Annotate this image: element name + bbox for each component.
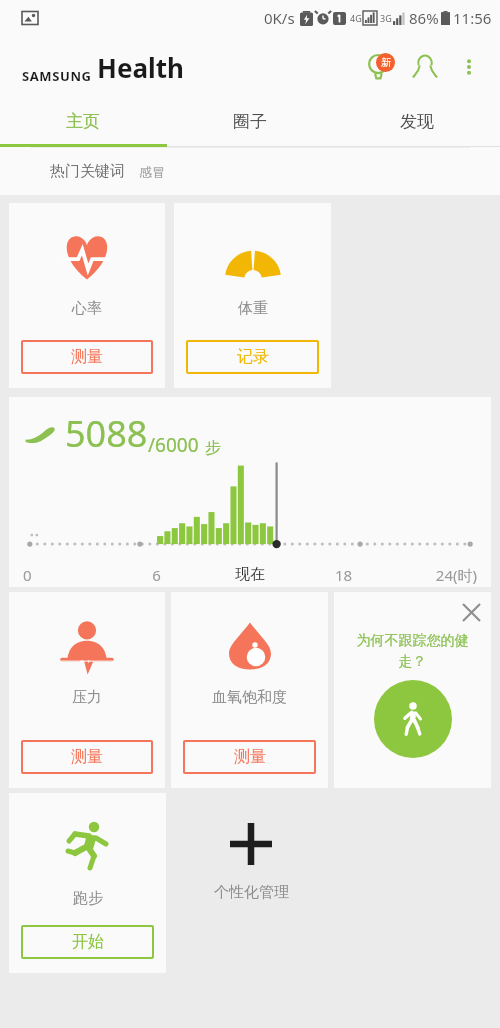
- button[interactable]: Close: [334, 592, 491, 788]
- staticText: 跑步: [73, 889, 103, 908]
- staticText: 开始: [72, 932, 104, 952]
- button[interactable]: Close: [451, 592, 491, 632]
- staticText: 圈子: [233, 111, 267, 132]
- staticText: 压力: [72, 688, 102, 707]
- button[interactable]: Profile: [402, 44, 448, 90]
- button[interactable]: 主页: [0, 98, 166, 144]
- staticText: 3G: [380, 12, 392, 24]
- staticText: 血氧饱和度: [212, 688, 287, 707]
- staticText: 0K/s: [264, 8, 295, 28]
- staticText: 24(时): [388, 565, 477, 585]
- staticText: 心率: [72, 299, 102, 318]
- button[interactable]: 心率: [9, 203, 165, 388]
- staticText: SAMSUNG: [22, 67, 92, 85]
- staticText: 11:56: [453, 8, 492, 28]
- button[interactable]: 个性化管理: [172, 793, 330, 973]
- button[interactable]: Tips, new: [356, 44, 402, 90]
- staticText: 0: [23, 565, 112, 585]
- staticText: 新: [381, 56, 391, 69]
- staticText: 体重: [238, 299, 268, 318]
- staticText: 86%: [409, 8, 439, 28]
- staticText: Health: [97, 50, 184, 85]
- button[interactable]: 记录: [186, 340, 319, 374]
- staticText: 18: [299, 565, 388, 585]
- staticText: /6000: [148, 432, 199, 458]
- staticText: 热门关键词: [50, 162, 125, 181]
- button[interactable]: 血氧饱和度: [171, 592, 328, 788]
- staticText: 5088: [65, 409, 148, 458]
- staticText: 现在: [201, 565, 299, 584]
- staticText: 6: [112, 565, 201, 585]
- staticText: 主页: [66, 111, 100, 132]
- button[interactable]: 感冒: [139, 164, 165, 180]
- button[interactable]: 开始: [21, 925, 154, 959]
- staticText: 发现: [400, 111, 434, 132]
- button[interactable]: 跑步: [9, 793, 166, 973]
- button[interactable]: 发现: [333, 98, 500, 144]
- button[interactable]: Start walking: [374, 680, 452, 758]
- button[interactable]: 体重: [174, 203, 331, 388]
- button[interactable]: 测量: [183, 740, 316, 774]
- staticText: 为何不跟踪您的健走？: [350, 632, 475, 670]
- button[interactable]: More options: [448, 46, 490, 88]
- button[interactable]: 圈子: [166, 98, 333, 144]
- staticText: 个性化管理: [214, 883, 289, 902]
- button[interactable]: 压力: [9, 592, 165, 788]
- staticText: 4G: [350, 12, 362, 24]
- staticText: 测量: [71, 347, 103, 367]
- button[interactable]: 测量: [21, 340, 153, 374]
- staticText: 步: [205, 438, 221, 458]
- button[interactable]: 测量: [21, 740, 153, 774]
- button[interactable]: 5088: [9, 397, 491, 587]
- staticText: 记录: [237, 347, 269, 367]
- staticText: 感冒: [139, 164, 165, 180]
- staticText: 测量: [71, 747, 103, 767]
- staticText: 测量: [234, 747, 266, 767]
